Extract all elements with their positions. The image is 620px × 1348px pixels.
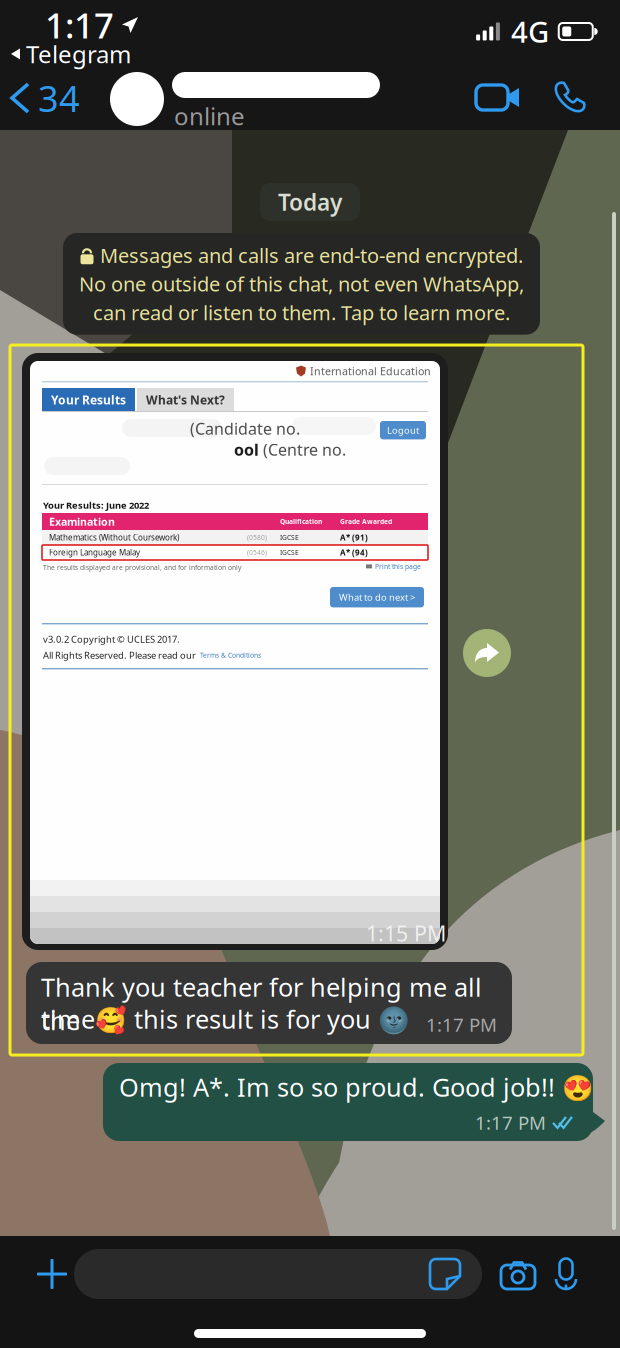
staticText: 34 <box>38 74 80 122</box>
staticText: A* (91) <box>340 532 368 543</box>
staticText: 4G <box>511 12 549 51</box>
staticText: can read or listen to them. Tap to learn… <box>93 299 510 326</box>
staticText: (Centre no. <box>259 439 346 460</box>
staticText: Today <box>278 187 342 217</box>
staticText: Foreign Language Malay <box>49 547 140 558</box>
button[interactable]: Video call <box>476 82 521 113</box>
staticText: No one outside of this chat, not even Wh… <box>79 271 524 297</box>
staticText: International Education <box>310 364 431 378</box>
staticText: A* (94) <box>340 547 368 558</box>
staticText: online <box>174 100 245 132</box>
button[interactable] <box>74 1249 482 1299</box>
staticText: (0546) <box>247 548 267 557</box>
staticText: Omg! A*. Im so so proud. Good job!! 😍 <box>119 1070 594 1104</box>
button[interactable]: online <box>110 70 382 128</box>
staticText: Telegram <box>26 38 131 70</box>
button[interactable]: Voice call <box>554 81 586 113</box>
staticText: (Candidate no. <box>190 418 300 439</box>
staticText: ool <box>234 439 259 460</box>
staticText: 1:15 PM <box>366 919 446 947</box>
staticText: Mathematics (Without Coursework) <box>49 532 179 543</box>
staticText: The results displayed are provisional, a… <box>43 563 241 572</box>
button[interactable]: 34 <box>0 68 90 128</box>
button[interactable]: Record voice message <box>554 1257 578 1291</box>
staticText: 1:17 PM <box>426 1012 497 1037</box>
button[interactable]: Camera <box>500 1258 536 1290</box>
staticText: 1:17 PM <box>475 1110 546 1135</box>
button[interactable]: Attach <box>20 1258 74 1290</box>
staticText: 1:17 <box>45 2 114 48</box>
staticText: (0580) <box>247 533 267 542</box>
staticText: Thank you teacher for helping me all the <box>41 970 482 1037</box>
staticText: Your Results: June 2022 <box>43 499 149 511</box>
staticText: time🥰 this result is for you 🌚 <box>41 1002 410 1036</box>
staticText: Grade Awarded <box>340 517 392 526</box>
staticText: Qualification <box>280 517 322 526</box>
staticText: Messages and calls are end-to-end encryp… <box>100 242 523 269</box>
staticText: IGCSE <box>280 548 299 557</box>
staticText: v3.0.2 Copyright © UCLES 2017. <box>43 633 180 645</box>
staticText: Your Results <box>51 392 126 408</box>
staticText: What to do next > <box>339 591 415 603</box>
staticText: Logout <box>387 424 419 436</box>
staticText: Terms & Conditions <box>200 651 261 660</box>
staticText: All Rights Reserved. Please read our <box>43 649 196 661</box>
staticText: Print this page <box>375 562 421 571</box>
staticText: Examination <box>49 514 115 529</box>
staticText: What's Next? <box>146 392 225 408</box>
staticText: IGCSE <box>280 533 299 542</box>
